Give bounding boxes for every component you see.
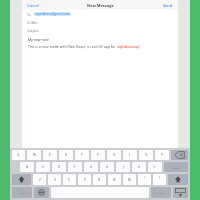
button[interactable]: X xyxy=(48,174,61,185)
staticText: F xyxy=(74,165,76,169)
staticText: I xyxy=(129,153,131,157)
button[interactable]: J xyxy=(116,162,130,172)
button[interactable]: B xyxy=(93,174,106,185)
staticText: . xyxy=(160,180,161,183)
staticText: Cc/Bcc: xyxy=(27,20,39,24)
button[interactable]: Shift xyxy=(12,174,31,185)
button[interactable]: D xyxy=(52,162,66,172)
button[interactable]: A xyxy=(20,162,34,172)
staticText: O xyxy=(145,153,148,157)
button[interactable]: L xyxy=(148,162,162,172)
staticText: This is a note made with Plain Notes, a … xyxy=(28,44,117,49)
button[interactable]: Shift xyxy=(168,174,188,185)
button[interactable]: O xyxy=(139,150,153,160)
button[interactable]: W xyxy=(27,150,41,160)
button[interactable]: Cancel xyxy=(26,2,40,9)
staticText: return xyxy=(172,166,180,169)
staticText: V xyxy=(84,178,86,182)
staticText: D xyxy=(58,165,61,169)
button[interactable]: To: xyxy=(22,10,178,18)
staticText: N xyxy=(113,178,116,182)
button[interactable]: Y xyxy=(91,150,105,160)
staticText: K xyxy=(138,165,140,169)
staticText: ? xyxy=(159,176,161,180)
staticText: E xyxy=(49,153,51,157)
button[interactable]: Hide keyboard xyxy=(173,187,188,198)
staticText: , xyxy=(144,180,145,183)
staticText: W xyxy=(33,153,36,157)
button[interactable]: I xyxy=(123,150,137,160)
staticText: Subject: xyxy=(27,28,40,32)
staticText: New Message xyxy=(87,3,114,8)
staticText: P xyxy=(161,153,163,157)
staticText: H xyxy=(106,165,109,169)
button[interactable]: P xyxy=(155,150,169,160)
button[interactable]: U xyxy=(107,150,121,160)
staticText: L xyxy=(154,165,156,169)
staticText: S xyxy=(42,165,44,169)
staticText: Z xyxy=(39,178,41,182)
button[interactable]: E xyxy=(43,150,57,160)
button[interactable]: .?123 xyxy=(151,187,171,198)
button[interactable]: Cc/Bcc: xyxy=(22,18,178,26)
staticText: J xyxy=(123,165,124,169)
staticText: .?123 xyxy=(19,191,25,194)
button[interactable]: ! xyxy=(138,174,151,185)
button[interactable]: S xyxy=(36,162,50,172)
staticText: M xyxy=(128,178,131,182)
staticText: To: xyxy=(27,12,32,16)
button[interactable]: Q xyxy=(12,150,25,160)
staticText: alphabetsoup! xyxy=(117,44,140,49)
staticText: B xyxy=(98,178,101,182)
staticText: Send xyxy=(163,3,173,8)
button[interactable]: N xyxy=(108,174,121,185)
staticText: Y xyxy=(97,153,99,157)
button[interactable]: F xyxy=(68,162,82,172)
staticText: U xyxy=(113,153,116,157)
button[interactable]: Backspace xyxy=(171,150,188,160)
button[interactable]: .?123 xyxy=(12,187,32,198)
button[interactable]: V xyxy=(78,174,91,185)
staticText: G xyxy=(90,165,93,169)
staticText: A xyxy=(26,165,29,169)
button[interactable]: Z xyxy=(33,174,46,185)
button[interactable]: G xyxy=(84,162,98,172)
staticText: T xyxy=(81,153,83,157)
staticText: R xyxy=(65,153,67,157)
button[interactable]: Subject: xyxy=(22,26,178,34)
button[interactable]: R xyxy=(59,150,73,160)
button[interactable]: K xyxy=(132,162,146,172)
button[interactable]: C xyxy=(63,174,76,185)
staticText: ! xyxy=(144,176,145,180)
button[interactable]: ? xyxy=(153,174,166,185)
staticText: Q xyxy=(17,153,20,157)
button[interactable]: return xyxy=(164,162,188,172)
button[interactable]: Send xyxy=(162,2,174,9)
button[interactable]: M xyxy=(123,174,136,185)
staticText: Cancel xyxy=(27,3,39,8)
button[interactable]: H xyxy=(100,162,114,172)
staticText: .?123 xyxy=(158,191,164,194)
staticText: myaddress@gmail.com xyxy=(35,12,70,16)
staticText: C xyxy=(68,178,71,182)
staticText: My new note xyxy=(28,37,49,42)
button[interactable]: Emoji xyxy=(34,187,49,198)
staticText: X xyxy=(54,178,56,182)
button[interactable]: T xyxy=(75,150,89,160)
